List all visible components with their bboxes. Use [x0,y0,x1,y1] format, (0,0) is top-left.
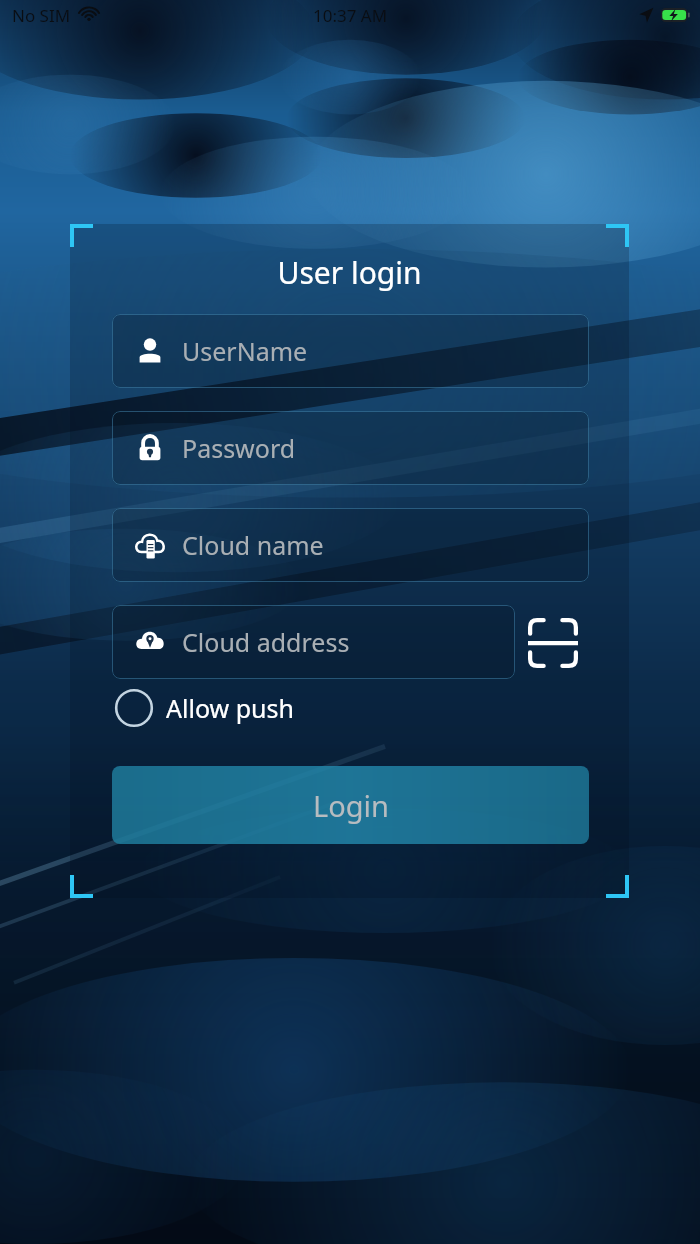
button[interactable]: Login [112,766,589,844]
staticText: Cloud address [182,625,350,659]
button[interactable]: Allow push [114,686,294,730]
button[interactable]: Cloud address [112,605,515,679]
staticText: Login [313,786,389,825]
staticText: Cloud name [182,528,324,562]
staticText: User login [70,252,629,293]
staticText: 10:37 AM [313,4,388,27]
button[interactable]: Cloud name [112,508,589,582]
button[interactable]: Scan QR code [521,611,585,675]
staticText: No SIM [12,4,71,27]
button[interactable]: UserName [112,314,589,388]
staticText: UserName [182,334,308,368]
staticText: Allow push [166,691,294,725]
button[interactable]: Password [112,411,589,485]
staticText: Password [182,431,296,465]
